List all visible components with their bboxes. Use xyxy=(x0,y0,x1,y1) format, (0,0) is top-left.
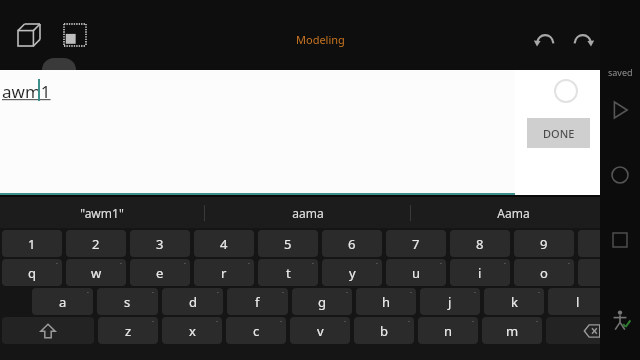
button[interactable]: 0 xyxy=(578,230,638,257)
button[interactable]: 3 xyxy=(130,230,190,257)
button[interactable]: f xyxy=(227,288,288,315)
staticText: a xyxy=(59,293,67,311)
staticText: · xyxy=(538,288,540,298)
staticText: · xyxy=(346,288,348,298)
button[interactable]: v xyxy=(290,317,350,344)
button[interactable]: r xyxy=(194,259,254,286)
button[interactable]: 9 xyxy=(514,230,574,257)
button[interactable]: g xyxy=(292,288,352,315)
button[interactable]: n xyxy=(418,317,478,344)
staticText: · xyxy=(87,288,89,298)
staticText: · xyxy=(474,288,476,298)
button[interactable]: 5 xyxy=(258,230,318,257)
button[interactable]: i xyxy=(450,259,510,286)
staticText: · xyxy=(282,288,284,298)
button[interactable]: q xyxy=(2,259,62,286)
staticText: 4 xyxy=(220,235,228,253)
staticText: aama xyxy=(292,205,324,221)
staticText: "awm1" xyxy=(80,205,124,221)
button[interactable]: Undo xyxy=(526,20,564,58)
button[interactable]: b xyxy=(354,317,414,344)
staticText: · xyxy=(440,259,442,269)
button[interactable]: h xyxy=(356,288,416,315)
button[interactable]: l xyxy=(548,288,608,315)
button[interactable]: Backspace xyxy=(546,317,638,344)
staticText: · xyxy=(56,259,58,269)
staticText: c xyxy=(253,322,260,340)
staticText: saved xyxy=(608,66,633,78)
button[interactable]: z xyxy=(98,317,158,344)
staticText: · xyxy=(248,259,250,269)
button[interactable]: s xyxy=(97,288,158,315)
button[interactable]: k xyxy=(484,288,544,315)
staticText: l xyxy=(576,293,580,311)
button[interactable]: DONE xyxy=(527,118,590,148)
staticText: x xyxy=(189,322,196,340)
staticText: Aama xyxy=(497,205,530,221)
button[interactable]: Recents xyxy=(600,220,640,260)
button[interactable]: Accessibility xyxy=(600,300,640,340)
button[interactable]: 2 xyxy=(66,230,126,257)
button[interactable]: Select xyxy=(52,12,98,58)
staticText: · xyxy=(504,259,506,269)
staticText: 1 xyxy=(28,235,36,253)
staticText: y xyxy=(349,264,356,282)
button[interactable]: p xyxy=(578,259,638,286)
staticText: s xyxy=(124,293,131,311)
button[interactable]: c xyxy=(226,317,286,344)
staticText: · xyxy=(344,317,346,327)
staticText: r xyxy=(221,264,227,282)
staticText: · xyxy=(217,288,219,298)
staticText: q xyxy=(28,264,36,282)
staticText: · xyxy=(152,288,154,298)
button[interactable]: 4 xyxy=(194,230,254,257)
button[interactable]: 6 xyxy=(322,230,382,257)
button[interactable]: o xyxy=(514,259,574,286)
staticText: · xyxy=(312,259,314,269)
button[interactable]: Home xyxy=(600,155,640,195)
staticText: b xyxy=(380,322,388,340)
button[interactable]: x xyxy=(162,317,222,344)
staticText: 6 xyxy=(348,235,356,253)
button[interactable]: j xyxy=(420,288,480,315)
button[interactable]: Aama xyxy=(411,197,616,228)
button[interactable]: "awm1" xyxy=(0,197,204,228)
staticText: u xyxy=(412,264,421,282)
staticText: · xyxy=(472,317,474,327)
staticText: · xyxy=(216,317,218,327)
staticText: d xyxy=(189,293,197,311)
button[interactable]: y xyxy=(322,259,382,286)
staticText: · xyxy=(152,317,154,327)
staticText: i xyxy=(478,264,482,282)
button[interactable]: Object mode xyxy=(6,12,52,58)
button[interactable]: d xyxy=(162,288,223,315)
button[interactable]: 8 xyxy=(450,230,510,257)
staticText: v xyxy=(317,322,324,340)
staticText: 3 xyxy=(156,235,164,253)
staticText: e xyxy=(156,264,164,282)
button[interactable]: Redo xyxy=(564,20,602,58)
staticText: o xyxy=(540,264,548,282)
button[interactable]: t xyxy=(258,259,318,286)
button[interactable]: w xyxy=(66,259,126,286)
button[interactable]: 1 xyxy=(2,230,62,257)
button[interactable]: Shift xyxy=(2,317,94,344)
button[interactable]: 7 xyxy=(386,230,446,257)
button[interactable]: m xyxy=(482,317,542,344)
button[interactable]: Back xyxy=(600,90,640,130)
button[interactable]: e xyxy=(130,259,190,286)
staticText: n xyxy=(444,322,453,340)
staticText: 8 xyxy=(476,235,484,253)
staticText: · xyxy=(280,317,282,327)
button[interactable]: u xyxy=(386,259,446,286)
staticText: 5 xyxy=(284,235,292,253)
staticText: awm1 xyxy=(2,80,51,103)
staticText: 2 xyxy=(92,235,100,253)
button[interactable]: aama xyxy=(205,197,410,228)
staticText: Modeling xyxy=(296,32,345,47)
button[interactable]: a xyxy=(32,288,93,315)
